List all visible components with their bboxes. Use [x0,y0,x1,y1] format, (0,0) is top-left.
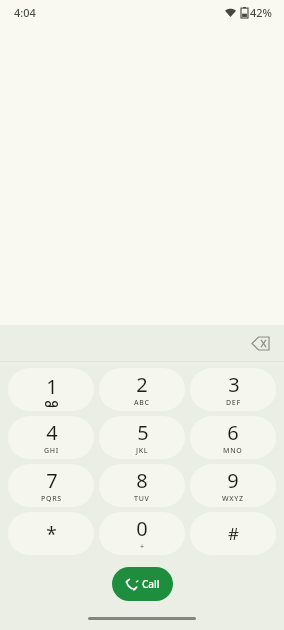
staticText: * [46,521,57,547]
staticText: WXYZ [222,494,244,504]
staticText: JKL [136,446,149,456]
staticText: 8 [136,467,148,494]
staticText: 2 [136,371,148,398]
staticText: 6 [227,419,239,446]
staticText: GHI [44,446,59,456]
button[interactable]: 9 [190,464,276,507]
button[interactable]: 5 [99,416,185,459]
staticText: + [140,542,145,552]
button[interactable]: 0 [99,512,185,555]
button[interactable]: Backspace [244,327,276,359]
staticText: # [228,522,239,545]
button[interactable]: 8 [99,464,185,507]
button[interactable]: 7 [8,464,94,507]
staticText: 7 [46,467,58,494]
staticText: PQRS [41,494,62,504]
button[interactable]: 3 [190,368,276,411]
button[interactable]: # [190,512,276,555]
button[interactable]: 6 [190,416,276,459]
staticText: MNO [223,446,243,456]
staticText: 3 [228,371,240,398]
staticText: 4:04 [14,5,36,20]
staticText: TUV [134,494,150,504]
button[interactable]: 1 [8,368,94,411]
button[interactable]: Call [112,567,173,601]
button[interactable]: 2 [99,368,185,411]
staticText: 4 [46,419,58,446]
staticText: 0 [136,515,148,542]
staticText: 1 [46,373,58,400]
staticText: 5 [137,419,149,446]
staticText: Call [142,577,160,591]
staticText: ABC [134,398,150,408]
button[interactable]: 4 [8,416,94,459]
button[interactable]: * [8,512,94,555]
staticText: DEF [226,398,241,408]
staticText: 42% [250,5,272,20]
staticText: 9 [227,467,239,494]
